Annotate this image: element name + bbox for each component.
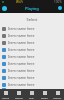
button[interactable]: Item name here	[0, 67, 64, 74]
staticText: Select	[0, 17, 64, 22]
staticText: Item name here	[8, 61, 35, 66]
staticText: Item name here	[8, 54, 35, 59]
staticText: Play	[29, 96, 34, 99]
button[interactable]: Item name here	[0, 25, 64, 32]
button[interactable]: Item name here	[0, 88, 64, 89]
button[interactable]: Item name here	[0, 46, 64, 53]
button[interactable]: Radio	[38, 89, 51, 100]
button[interactable]: Item name here	[0, 32, 64, 39]
staticText: 100%	[54, 0, 62, 4]
staticText: Item name here	[8, 82, 35, 87]
staticText: Home	[2, 96, 10, 99]
staticText: Playing	[25, 6, 39, 11]
button[interactable]: Item name here	[0, 60, 64, 67]
staticText: Wi-Fi	[16, 0, 23, 4]
staticText: Item name here	[8, 75, 35, 80]
staticText: Search	[15, 96, 23, 99]
button[interactable]: Library	[51, 89, 64, 100]
button[interactable]: Play	[25, 89, 38, 100]
button[interactable]: Item name here	[0, 53, 64, 60]
button[interactable]: Home	[0, 89, 12, 100]
staticText: Item name here	[8, 47, 35, 52]
staticText: Item name here	[8, 40, 35, 45]
staticText: Item name here	[8, 26, 35, 31]
staticText: Library	[53, 96, 62, 99]
button[interactable]: Item name here	[0, 74, 64, 81]
staticText: Item name here	[8, 33, 35, 38]
staticText: Item name here	[8, 68, 35, 73]
button[interactable]: Item name here	[0, 81, 64, 88]
button[interactable]: Search	[12, 89, 25, 100]
staticText: Radio	[41, 96, 48, 99]
button[interactable]: Item name here	[0, 39, 64, 46]
